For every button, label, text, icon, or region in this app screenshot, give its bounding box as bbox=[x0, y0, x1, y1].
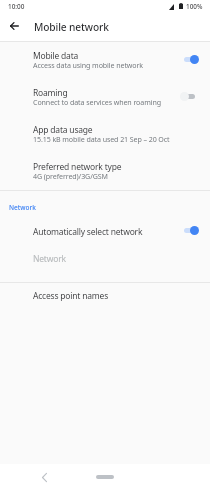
button[interactable]: Access point names bbox=[0, 283, 210, 309]
button[interactable]: Mobile data bbox=[0, 42, 210, 79]
staticText: Connect to data services when roaming bbox=[33, 97, 161, 107]
button[interactable]: Automatically select network bbox=[0, 218, 210, 245]
button[interactable]: Preferred network type bbox=[0, 153, 210, 190]
button[interactable]: Home bbox=[96, 475, 114, 479]
button[interactable]: Roaming bbox=[0, 79, 210, 116]
staticText: 15.15 kB mobile data used 21 Sep – 20 Oc… bbox=[33, 134, 170, 144]
staticText: 10:00 bbox=[8, 2, 25, 11]
staticText: 100% bbox=[186, 2, 203, 11]
staticText: Network bbox=[9, 203, 36, 212]
button[interactable]: Navigate up bbox=[1, 13, 27, 39]
staticText: 4G (preferred)/3G/GSM bbox=[33, 171, 108, 181]
staticText: Network bbox=[33, 253, 66, 265]
staticText: Automatically select network bbox=[33, 226, 143, 238]
staticText: Roaming bbox=[33, 87, 68, 99]
staticText: Mobile data bbox=[33, 50, 79, 62]
staticText: Access data using mobile network bbox=[33, 60, 144, 70]
button[interactable]: App data usage bbox=[0, 116, 210, 153]
button[interactable]: Back bbox=[36, 469, 52, 485]
staticText: Preferred network type bbox=[33, 161, 122, 173]
staticText: App data usage bbox=[33, 124, 93, 136]
button[interactable]: Network bbox=[0, 245, 210, 272]
staticText: Access point names bbox=[33, 290, 109, 302]
staticText: Mobile network bbox=[34, 20, 109, 34]
